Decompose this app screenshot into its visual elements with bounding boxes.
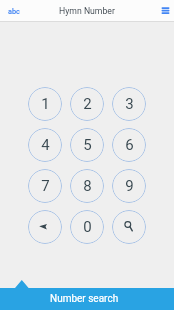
staticText: 4 <box>41 136 50 154</box>
button[interactable]: Number search <box>0 288 174 310</box>
button[interactable]: 0 <box>70 210 104 244</box>
button[interactable]: 1 <box>28 87 62 121</box>
button[interactable]: 2 <box>70 87 104 121</box>
staticText: abc <box>8 7 20 16</box>
button[interactable]: abc <box>3 2 25 19</box>
button[interactable]: 5 <box>70 128 104 162</box>
button[interactable]: 6 <box>112 128 146 162</box>
staticText: 0 <box>83 218 92 236</box>
button[interactable]: 7 <box>28 169 62 203</box>
staticText: 3 <box>125 95 134 113</box>
button[interactable]: 9 <box>112 169 146 203</box>
button[interactable]: 4 <box>28 128 62 162</box>
staticText: 5 <box>83 136 92 154</box>
button[interactable]: Backspace <box>28 210 62 244</box>
button[interactable]: Menu <box>157 3 173 19</box>
staticText: 9 <box>125 177 134 195</box>
button[interactable]: 8 <box>70 169 104 203</box>
button[interactable]: 3 <box>112 87 146 121</box>
staticText: 8 <box>83 177 92 195</box>
staticText: Number search <box>50 293 119 305</box>
staticText: 7 <box>41 177 50 195</box>
staticText: Hymn Number <box>59 6 115 16</box>
staticText: 2 <box>83 95 92 113</box>
staticText: 6 <box>125 136 134 154</box>
staticText: 1 <box>41 95 50 113</box>
button[interactable]: Search <box>112 210 146 244</box>
